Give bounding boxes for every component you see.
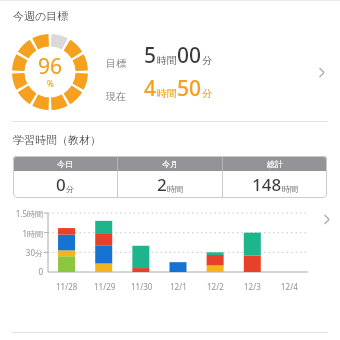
staticText: 12/2 bbox=[207, 281, 224, 292]
staticText: 11/29 bbox=[94, 281, 116, 292]
staticText: 0 bbox=[38, 266, 43, 277]
staticText: 分 bbox=[202, 87, 212, 100]
staticText: 今週の目標 bbox=[13, 9, 69, 23]
staticText: 30分 bbox=[25, 247, 43, 258]
staticText: 4 bbox=[144, 74, 157, 103]
staticText: 学習時間（教材） bbox=[13, 133, 101, 147]
staticText: 現在 bbox=[106, 90, 126, 103]
staticText: 148 bbox=[252, 173, 282, 196]
staticText: 時間 bbox=[167, 184, 183, 194]
staticText: 分 bbox=[66, 184, 74, 194]
staticText: 12/1 bbox=[170, 281, 187, 292]
staticText: 11/30 bbox=[131, 281, 153, 292]
button[interactable]: 学習時間の詳細を開く bbox=[313, 206, 339, 232]
staticText: 0 bbox=[56, 173, 66, 196]
staticText: 1時間 bbox=[22, 228, 43, 239]
staticText: 時間 bbox=[157, 54, 177, 67]
staticText: 50 bbox=[177, 74, 202, 103]
staticText: 2 bbox=[157, 173, 167, 196]
staticText: 時間 bbox=[157, 87, 177, 100]
staticText: 12/3 bbox=[244, 281, 261, 292]
staticText: 5 bbox=[144, 41, 157, 70]
staticText: 12/4 bbox=[281, 281, 298, 292]
button[interactable]: 今週の目標の詳細を開く bbox=[308, 59, 334, 85]
staticText: 分 bbox=[202, 54, 212, 67]
button[interactable]: 96 bbox=[0, 23, 340, 121]
staticText: 総計 bbox=[267, 159, 283, 169]
staticText: 今日 bbox=[57, 159, 73, 169]
button[interactable]: 1.5時間 bbox=[0, 206, 340, 298]
staticText: 目標 bbox=[106, 57, 126, 70]
staticText: 00 bbox=[177, 41, 202, 70]
staticText: 時間 bbox=[282, 184, 298, 194]
staticText: 今月 bbox=[162, 159, 178, 169]
staticText: 96 bbox=[38, 52, 63, 81]
staticText: 1.5時間 bbox=[15, 208, 43, 219]
button[interactable]: 今日 bbox=[13, 156, 327, 198]
staticText: % bbox=[47, 78, 54, 89]
staticText: 11/28 bbox=[56, 281, 78, 292]
